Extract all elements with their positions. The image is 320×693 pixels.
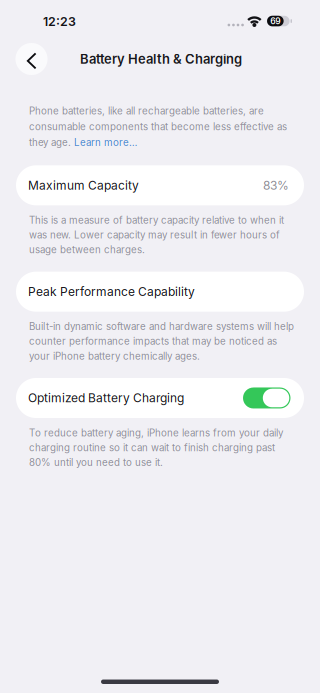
- staticText: Phone batteries, like all rechargeable b…: [29, 105, 264, 117]
- staticText: This is a measure of battery capacity re…: [29, 214, 284, 256]
- staticText: Battery Health & Charging: [80, 51, 242, 67]
- staticText: Built-in dynamic software and hardware s…: [29, 321, 294, 362]
- button[interactable]: Peak Performance Capability: [16, 272, 304, 312]
- button[interactable]: Back: [15, 43, 47, 75]
- staticText: To reduce battery aging, iPhone learns f…: [29, 427, 283, 468]
- staticText: Maximum Capacity: [28, 178, 139, 193]
- button[interactable]: Learn more…: [74, 137, 137, 148]
- staticText: consumable components that become less e…: [29, 121, 287, 133]
- staticText: 69: [270, 16, 280, 26]
- staticText: Learn more…: [74, 137, 137, 148]
- staticText: 12:23: [43, 14, 76, 29]
- button[interactable]: Maximum Capacity: [16, 165, 304, 205]
- staticText: Peak Performance Capability: [28, 284, 195, 299]
- staticText: Optimized Battery Charging: [28, 391, 184, 405]
- button[interactable]: Optimized Battery Charging: [16, 378, 304, 418]
- staticText: 83%: [263, 178, 289, 193]
- staticText: they age.: [29, 137, 74, 148]
